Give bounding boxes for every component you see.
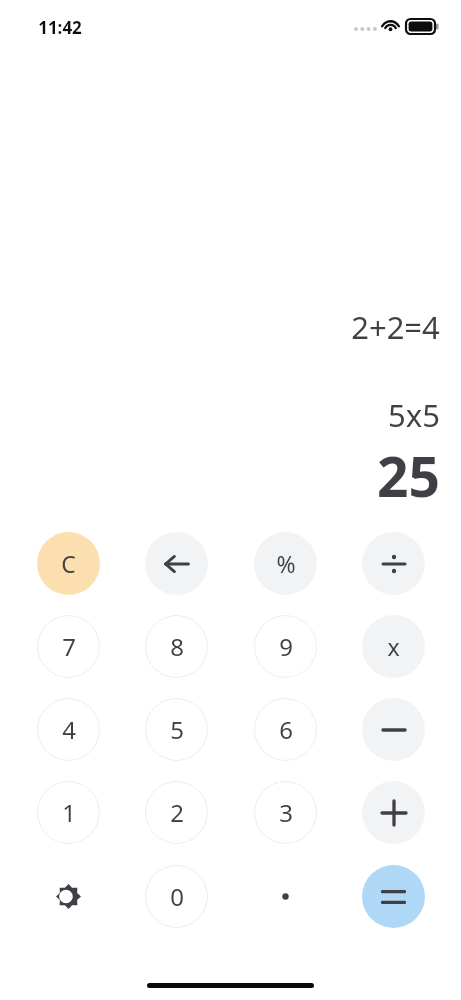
staticText: 8 bbox=[170, 630, 184, 663]
staticText: 5 bbox=[170, 713, 184, 746]
button[interactable]: 9 bbox=[254, 615, 317, 678]
button[interactable]: 6 bbox=[254, 698, 317, 761]
staticText: 4 bbox=[62, 713, 76, 746]
button[interactable]: Minus bbox=[362, 698, 425, 761]
staticText: 11:42 bbox=[38, 16, 82, 39]
button[interactable]: Backspace bbox=[145, 532, 208, 595]
button[interactable]: 4 bbox=[37, 698, 100, 761]
button[interactable]: C bbox=[37, 532, 100, 595]
staticText: 9 bbox=[279, 630, 293, 663]
staticText: 0 bbox=[170, 880, 184, 913]
button[interactable]: 3 bbox=[254, 781, 317, 844]
staticText: x bbox=[387, 631, 400, 662]
staticText: C bbox=[61, 548, 76, 579]
button[interactable]: Plus bbox=[362, 781, 425, 844]
staticText: 3 bbox=[279, 796, 293, 829]
button[interactable]: 1 bbox=[37, 781, 100, 844]
button[interactable]: % bbox=[254, 532, 317, 595]
button[interactable]: Toggle theme bbox=[37, 865, 100, 928]
staticText: 1 bbox=[62, 796, 76, 829]
button[interactable]: x bbox=[362, 615, 425, 678]
button[interactable]: Equals bbox=[362, 865, 425, 928]
button[interactable]: 8 bbox=[145, 615, 208, 678]
button[interactable]: 7 bbox=[37, 615, 100, 678]
button[interactable]: 5 bbox=[145, 698, 208, 761]
staticText: 25 bbox=[377, 438, 440, 513]
staticText: % bbox=[276, 548, 296, 579]
staticText: 2 bbox=[170, 796, 184, 829]
staticText: 7 bbox=[62, 630, 76, 663]
button[interactable]: Divide bbox=[362, 532, 425, 595]
button[interactable]: 2 bbox=[145, 781, 208, 844]
button[interactable]: 0 bbox=[145, 865, 208, 928]
staticText: 6 bbox=[279, 713, 293, 746]
staticText: 2+2=4 bbox=[351, 306, 440, 348]
staticText: 5x5 bbox=[388, 394, 440, 436]
button[interactable]: Decimal point bbox=[254, 865, 317, 928]
